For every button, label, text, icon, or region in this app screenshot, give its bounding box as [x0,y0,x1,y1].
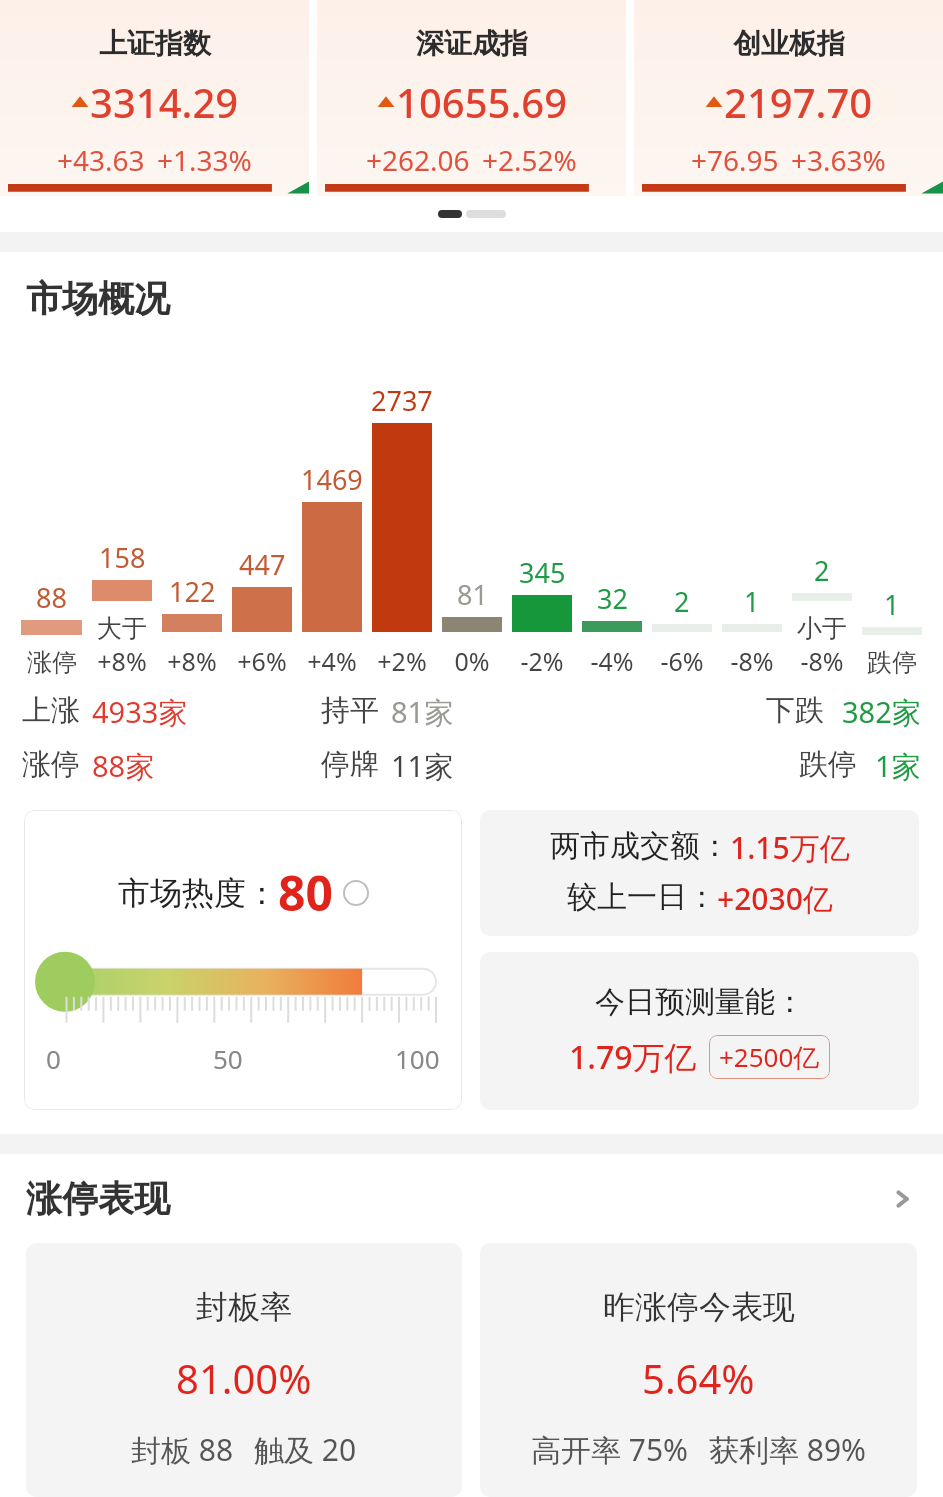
staticText: 88家 [92,746,155,786]
staticText: 涨停 [27,647,77,678]
other: 查看更多 [887,1184,917,1214]
staticText: 447 [239,546,286,583]
staticText: 1 [744,583,760,620]
staticText: 4933家 [92,692,188,732]
staticText: 较上一日： [567,878,717,916]
staticText: 获利率 89% [709,1429,867,1470]
staticText: 1469 [301,461,363,498]
staticText: 5.64% [642,1351,755,1405]
staticText: 封板 88 [131,1429,234,1470]
staticText: 345 [519,554,566,591]
button[interactable]: 创业板指 [634,0,943,196]
staticText: 0 [46,1041,61,1076]
staticText: -2% [520,644,564,678]
staticText: +43.63 [57,141,145,179]
staticText: 涨停 [22,746,80,783]
staticText: 32 [597,580,628,617]
staticText: +2.52% [482,141,577,179]
staticText: 88 [36,579,67,616]
staticText: 涨停表现 [26,1176,170,1221]
staticText: 下跌 [766,692,824,729]
staticText: -8% [730,644,774,678]
staticText: 创业板指 [733,26,845,61]
staticText: 80 [278,860,333,925]
button[interactable]: 市场热度： [24,810,462,1110]
staticText: 两市成交额： [550,827,730,865]
staticText: 11家 [391,746,454,786]
staticText: 1 [884,586,900,623]
button[interactable]: 涨停表现 [26,1176,917,1221]
staticText: 上证指数 [99,26,211,61]
button[interactable]: 昨涨停今表现 [480,1243,917,1497]
staticText: 100 [395,1041,440,1076]
staticText: 大于 [97,613,147,644]
staticText: 1.79万亿 [569,1035,697,1079]
staticText: 10655.69 [396,75,568,129]
staticText: 81家 [391,692,454,732]
staticText: 市场热度： [118,873,278,913]
staticText: 382家 [842,692,921,732]
staticText: +76.95 [691,141,779,179]
staticText: 1.15万亿 [730,827,850,868]
button[interactable]: 上证指数 [0,0,309,196]
staticText: +6% [237,644,287,678]
staticText: 122 [169,573,216,610]
staticText: 0% [454,644,490,678]
button[interactable]: 两市成交额： [480,810,919,936]
staticText: 3314.29 [90,75,239,129]
staticText: 跌停 [799,746,857,783]
button[interactable]: 封板率 [26,1243,462,1497]
staticText: -4% [590,644,634,678]
staticText: 小于 [797,613,847,644]
staticText: +262.06 [366,141,470,179]
staticText: +2500亿 [719,1039,820,1075]
staticText: 深证成指 [416,26,528,61]
staticText: 81 [457,576,488,613]
staticText: 持平 [321,692,379,729]
staticText: +8% [97,644,147,678]
staticText: +4% [307,644,357,678]
staticText: 上涨 [22,692,80,729]
staticText: 2737 [371,382,433,419]
staticText: 跌停 [867,647,917,678]
staticText: +2030亿 [717,878,833,919]
staticText: 今日预测量能： [595,983,805,1021]
staticText: 市场概况 [26,276,170,321]
staticText: +1.33% [157,141,252,179]
button[interactable]: 深证成指 [317,0,626,196]
staticText: 1家 [875,746,921,786]
staticText: 2197.70 [724,75,873,129]
staticText: 封板率 [196,1287,292,1327]
staticText: 81.00% [176,1351,312,1405]
button[interactable]: 今日预测量能： [480,952,919,1110]
staticText: 昨涨停今表现 [603,1287,795,1327]
staticText: -8% [800,644,844,678]
staticText: +3.63% [791,141,886,179]
staticText: -6% [660,644,704,678]
staticText: 高开率 75% [531,1429,689,1470]
staticText: 停牌 [321,746,379,783]
button[interactable]: 帮助 [343,880,369,906]
staticText: 2 [674,583,690,620]
staticText: +8% [167,644,217,678]
staticText: 2 [814,552,830,589]
staticText: 50 [213,1041,243,1076]
staticText: +2% [377,644,427,678]
staticText: 158 [99,539,146,576]
staticText: 触及 20 [254,1429,357,1470]
